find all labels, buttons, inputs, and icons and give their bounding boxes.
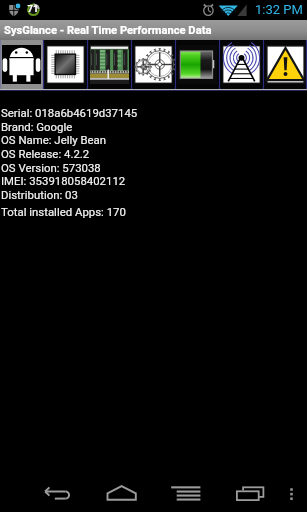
staticText: OS Version: 573038 (1, 161, 101, 174)
button[interactable]: Processes (131, 40, 175, 89)
button[interactable]: Alerts (263, 40, 307, 89)
staticText: 1:32 PM (255, 2, 303, 17)
staticText: OS Release: 4.2.2 (1, 147, 90, 160)
staticText: IMEI: 353918058402112 (1, 174, 126, 187)
staticText: Brand: Google (1, 120, 73, 133)
button[interactable]: Network (219, 40, 263, 89)
staticText: Total installed Apps: 170 (1, 205, 126, 218)
button[interactable]: System (0, 40, 43, 89)
button[interactable]: CPU (43, 40, 87, 89)
button[interactable]: Menu (171, 486, 201, 501)
button[interactable]: Memory (87, 40, 131, 89)
staticText: OS Name: Jelly Bean (1, 133, 107, 146)
button[interactable]: Battery (175, 40, 219, 89)
button[interactable]: Home (106, 485, 138, 501)
button[interactable]: More options (286, 486, 298, 502)
button[interactable]: Recent apps (235, 486, 265, 502)
staticText: SysGlance - Real Time Performance Data (4, 24, 212, 37)
button[interactable]: Back (43, 486, 73, 500)
staticText: Distribution: 03 (1, 188, 78, 201)
staticText: 71 (27, 3, 39, 14)
staticText: Serial: 018a6b4619d37145 (1, 106, 138, 119)
